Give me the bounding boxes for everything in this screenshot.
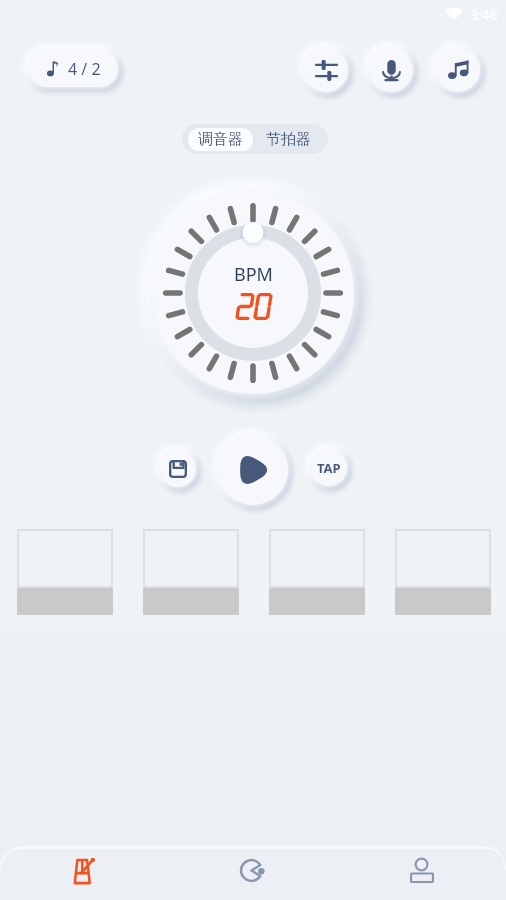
button[interactable]: Metronome: [0, 846, 168, 900]
staticText: 调音器: [198, 130, 243, 149]
staticText: 3:46: [470, 5, 498, 24]
staticText: 4 / 2: [68, 58, 101, 80]
button[interactable]: TAP: [311, 450, 347, 486]
button[interactable]: Beat 4: [395, 529, 491, 615]
staticText: 节拍器: [266, 130, 311, 149]
button[interactable]: Songs: [436, 48, 480, 92]
button[interactable]: 4 / 2: [29, 51, 118, 87]
staticText: BPM: [234, 262, 273, 287]
button[interactable]: Tuner: [168, 846, 337, 900]
button[interactable]: Beat 1: [17, 529, 113, 615]
button[interactable]: Save preset: [160, 451, 196, 487]
button[interactable]: Profile: [337, 846, 506, 900]
button[interactable]: 调音器: [188, 128, 253, 151]
button[interactable]: Beat 2: [143, 529, 239, 615]
button[interactable]: 节拍器: [253, 128, 323, 151]
button[interactable]: Microphone: [369, 48, 413, 92]
button[interactable]: Play: [218, 435, 288, 505]
button[interactable]: Beat 3: [269, 529, 365, 615]
staticText: TAP: [317, 459, 341, 477]
button[interactable]: BPM dial: [152, 192, 354, 394]
button[interactable]: Tuner settings: [304, 48, 348, 92]
